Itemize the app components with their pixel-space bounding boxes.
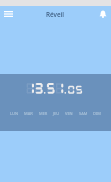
staticText: SAM	[79, 111, 88, 116]
button[interactable]: Menu	[0, 6, 17, 22]
staticText: LUN	[10, 111, 19, 116]
staticText: Réveil	[46, 10, 65, 19]
staticText: DIM	[93, 111, 101, 116]
button[interactable]: Alarm	[95, 6, 111, 22]
staticText: MAR	[24, 111, 33, 116]
staticText: JEU	[53, 111, 60, 116]
staticText: MER	[39, 111, 48, 116]
staticText: VEN	[65, 111, 73, 116]
